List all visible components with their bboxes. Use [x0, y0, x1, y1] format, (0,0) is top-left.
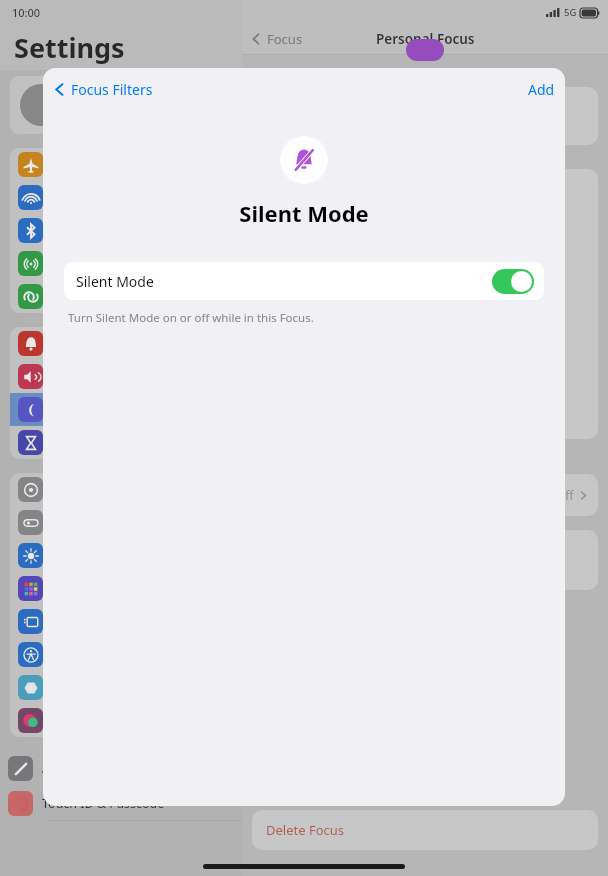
staticText: Personal Focus [376, 30, 475, 48]
staticText: Settings [14, 29, 125, 66]
button[interactable]: Silent Mode toggle, on [492, 269, 534, 294]
button[interactable]: Touch ID & Passcode [0, 786, 242, 820]
staticText: Personal Hotspot [52, 289, 150, 305]
button[interactable]: Apple Pencil [0, 751, 242, 785]
staticText: Turn Silent Mode on or off while in this… [68, 310, 314, 326]
button[interactable]: Accessibility [10, 638, 232, 671]
button[interactable]: Off [252, 474, 598, 516]
button[interactable]: Home Screen [10, 572, 232, 605]
staticText: Silent Mode [43, 198, 565, 228]
button[interactable]: Control Center [10, 506, 232, 539]
staticText: Cellular [52, 256, 95, 272]
button[interactable]: Screen Time [10, 426, 232, 459]
button[interactable]: Multitasking [10, 605, 232, 638]
button[interactable]: Delete Focus [252, 810, 598, 850]
button[interactable]: Wi-Fi [10, 181, 232, 214]
button[interactable]: Display & Brightness [10, 539, 232, 572]
button[interactable]: Wallpaper [10, 671, 232, 704]
button[interactable] [10, 76, 232, 134]
staticText: Delete Focus [266, 821, 345, 839]
staticText: 5G [564, 6, 577, 19]
button[interactable]: Siri & Search [10, 704, 232, 737]
button[interactable]: Add [528, 80, 555, 99]
button[interactable]: General [10, 473, 232, 506]
staticText: Off [556, 487, 574, 503]
staticText: 10:00 [12, 5, 41, 20]
staticText: Silent Mode [76, 272, 154, 291]
button[interactable]: Notifications [10, 327, 232, 360]
staticText: Add [528, 80, 555, 99]
button[interactable]: Cellular [10, 247, 232, 280]
button[interactable]: Silent Mode [64, 262, 544, 300]
button[interactable]: Airplane Mode [10, 148, 232, 181]
button[interactable]: Focus [250, 30, 303, 48]
button[interactable]: Focus [10, 393, 232, 426]
button[interactable]: Focus Filters [53, 80, 153, 99]
button[interactable]: Sounds [10, 360, 232, 393]
staticText: Focus [267, 30, 303, 48]
staticText: Focus Filters [71, 80, 153, 99]
button[interactable]: Bluetooth [10, 214, 232, 247]
staticText: Touch ID & Passcode [42, 795, 165, 812]
staticText: Apple Pencil [42, 760, 114, 777]
button[interactable]: Personal Hotspot [10, 280, 232, 313]
